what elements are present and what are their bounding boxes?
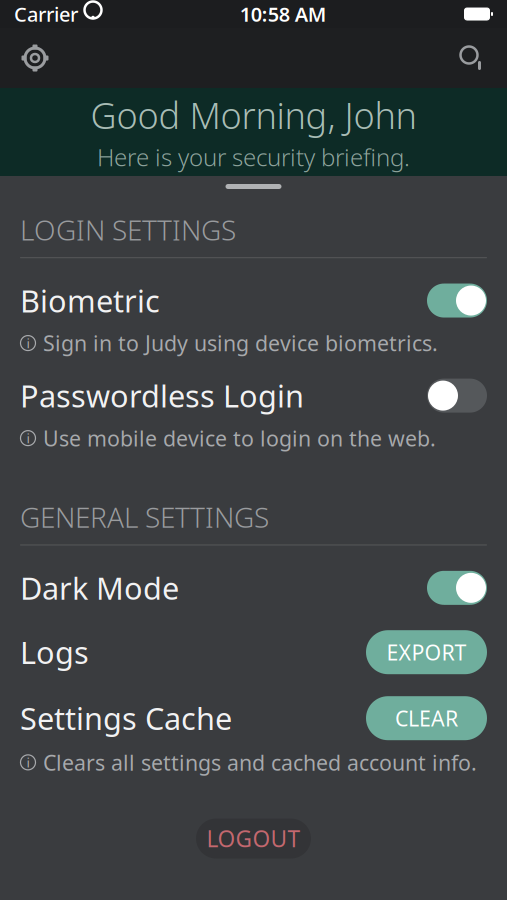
staticText: Good Morning, John <box>90 91 416 139</box>
staticText: Dark Mode <box>20 567 179 608</box>
staticText: Sign in to Judy using device biometrics. <box>43 329 438 357</box>
staticText: Biometric <box>20 280 160 321</box>
staticText: 10:58 AM <box>240 1 327 27</box>
staticText: Clears all settings and cached account i… <box>43 748 477 776</box>
staticText: GENERAL SETTINGS <box>20 498 269 535</box>
button[interactable]: EXPORT <box>366 630 487 674</box>
staticText: Logs <box>20 632 89 672</box>
staticText: i <box>26 429 29 447</box>
staticText: Use mobile device to login on the web. <box>43 424 436 452</box>
staticText: Settings Cache <box>20 698 232 738</box>
button[interactable]: Biometric <box>0 280 507 357</box>
staticText: LOGOUT <box>206 823 300 854</box>
button[interactable]: CLEAR <box>366 696 487 740</box>
button[interactable]: LOGOUT <box>196 818 311 858</box>
staticText: CLEAR <box>395 704 458 732</box>
staticText: i <box>26 753 29 771</box>
button[interactable]: Search <box>445 30 499 86</box>
staticText: Here is your security briefing. <box>97 141 410 173</box>
staticText: LOGIN SETTINGS <box>20 211 236 248</box>
button[interactable]: Dark Mode <box>0 567 507 608</box>
staticText: Passwordless Login <box>20 375 304 416</box>
button[interactable]: Passwordless Login <box>0 375 507 452</box>
staticText: EXPORT <box>386 638 466 666</box>
button[interactable]: Settings <box>8 30 62 86</box>
staticText: Carrier <box>14 1 78 27</box>
staticText: i <box>26 334 29 352</box>
